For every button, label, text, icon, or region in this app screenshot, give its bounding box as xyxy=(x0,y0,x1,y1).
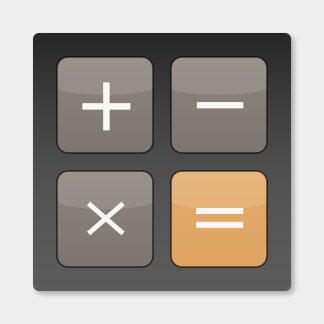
button[interactable]: Add xyxy=(57,57,153,153)
button[interactable]: Subtract xyxy=(171,57,267,153)
button[interactable]: Multiply xyxy=(57,171,153,267)
button[interactable]: Equals xyxy=(171,171,267,267)
